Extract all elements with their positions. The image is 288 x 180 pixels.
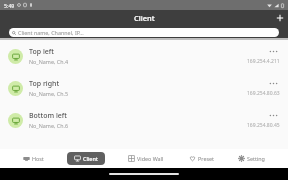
button[interactable]: Bottom left bbox=[0, 104, 288, 136]
button[interactable]: Top left bbox=[0, 40, 288, 72]
staticText: Setting bbox=[247, 155, 265, 162]
staticText: 169.254.80.63 bbox=[247, 90, 280, 97]
button[interactable]: Host bbox=[22, 152, 45, 165]
button[interactable]: Client bbox=[67, 152, 105, 165]
staticText: Top left bbox=[29, 47, 54, 57]
staticText: Top right bbox=[29, 79, 60, 89]
button[interactable]: Client name, Channel, IP... bbox=[9, 28, 279, 37]
button[interactable]: More options for Top right bbox=[266, 79, 280, 88]
button[interactable]: More options for Top left bbox=[266, 47, 280, 56]
staticText: Client name, Channel, IP... bbox=[18, 29, 84, 36]
staticText: 169.254.80.45 bbox=[247, 122, 280, 129]
button[interactable]: Setting bbox=[237, 152, 266, 165]
staticText: No_Name, Ch.5 bbox=[29, 90, 69, 97]
staticText: Client bbox=[134, 13, 155, 23]
staticText: Bottom left bbox=[29, 111, 68, 121]
button[interactable]: Video Wall bbox=[127, 152, 165, 165]
staticText: 5:49 bbox=[4, 2, 15, 9]
staticText: Video Wall bbox=[137, 155, 164, 162]
staticText: Preset bbox=[198, 155, 214, 162]
staticText: No_Name, Ch.6 bbox=[29, 122, 69, 129]
staticText: 169.254.4.211 bbox=[247, 58, 280, 65]
button[interactable]: More options for Bottom left bbox=[266, 111, 280, 120]
staticText: Host bbox=[32, 155, 44, 162]
button[interactable]: Top right bbox=[0, 72, 288, 104]
staticText: Client bbox=[83, 155, 98, 162]
staticText: No_Name, Ch.4 bbox=[29, 58, 69, 65]
button[interactable]: Preset bbox=[188, 152, 215, 165]
button[interactable]: Add client bbox=[272, 10, 288, 26]
